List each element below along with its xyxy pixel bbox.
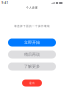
button[interactable]: 稍后再说 bbox=[0, 50, 64, 58]
staticText: 9:41 bbox=[1, 1, 8, 5]
staticText: 退出 bbox=[29, 81, 35, 85]
staticText: 请选择下面的一个操作继续 bbox=[14, 24, 50, 28]
staticText: 了解更多 bbox=[24, 64, 40, 69]
staticText: 立即开始 bbox=[24, 40, 40, 45]
button[interactable]: 退出 bbox=[22, 79, 42, 86]
button[interactable]: 了解更多 bbox=[0, 62, 64, 70]
staticText: 稍后再说 bbox=[24, 52, 40, 57]
staticText: 个人设置 bbox=[26, 6, 38, 9]
button[interactable]: 立即开始 bbox=[0, 38, 64, 46]
